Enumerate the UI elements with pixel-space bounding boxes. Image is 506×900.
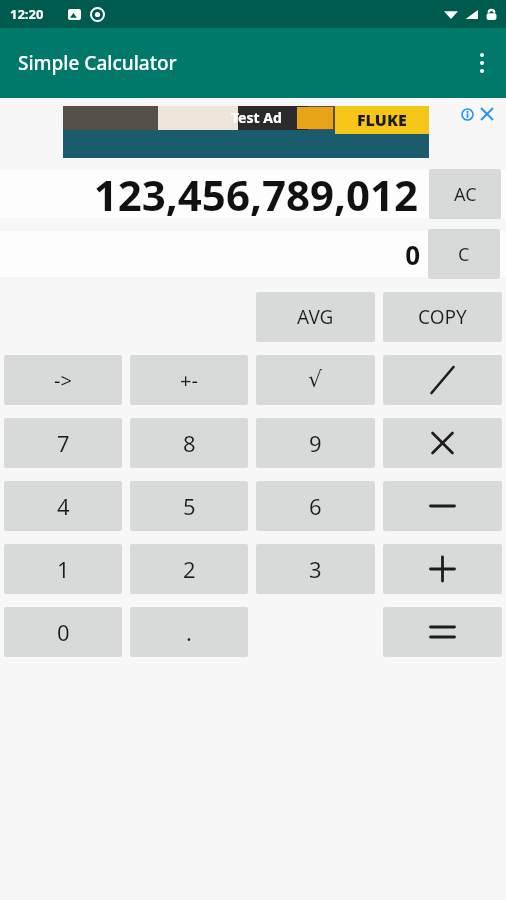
button[interactable]: Ad info (461, 108, 474, 121)
staticText: 9 (309, 428, 322, 458)
button[interactable]: 5 (130, 481, 248, 531)
button[interactable]: Multiply (383, 418, 502, 468)
button[interactable]: AVG (256, 292, 375, 342)
staticText: . (186, 617, 192, 647)
button[interactable]: Plus (383, 544, 502, 594)
staticText: 3 (309, 554, 322, 584)
button[interactable]: . (130, 607, 248, 657)
button[interactable]: AC (429, 169, 501, 219)
button[interactable]: √ (256, 355, 375, 405)
button[interactable]: +- (130, 355, 248, 405)
staticText: AVG (297, 304, 334, 330)
button[interactable]: 3 (256, 544, 375, 594)
staticText: 12:20 (10, 5, 44, 23)
staticText: 4 (57, 491, 70, 521)
staticText: √ (308, 367, 323, 393)
button[interactable]: Minus (383, 481, 502, 531)
staticText: -> (54, 367, 72, 394)
button[interactable]: C (428, 229, 500, 279)
button[interactable]: Advertisement (63, 106, 429, 158)
button[interactable]: 1 (4, 544, 122, 594)
button[interactable]: Divide (383, 355, 502, 405)
staticText: FLUKE (357, 109, 407, 131)
button[interactable]: 7 (4, 418, 122, 468)
button[interactable]: COPY (383, 292, 502, 342)
staticText: Test Ad (231, 108, 282, 127)
button[interactable]: Equals (383, 607, 502, 657)
button[interactable]: 9 (256, 418, 375, 468)
staticText: C (458, 242, 470, 267)
staticText: 6 (309, 491, 322, 521)
button[interactable]: Close ad (480, 107, 494, 121)
button[interactable]: 0 (4, 607, 122, 657)
staticText: 1 (57, 554, 70, 584)
staticText: 0 (14, 237, 420, 272)
staticText: AC (454, 182, 477, 207)
staticText: 2 (183, 554, 196, 584)
staticText: 5 (183, 491, 196, 521)
button[interactable]: More options (458, 28, 506, 98)
staticText: +- (180, 367, 198, 394)
button[interactable]: 2 (130, 544, 248, 594)
staticText: 123,456,789,012 (14, 166, 418, 222)
button[interactable]: 4 (4, 481, 122, 531)
staticText: 7 (57, 428, 70, 458)
button[interactable]: -> (4, 355, 122, 405)
staticText: 8 (183, 428, 196, 458)
staticText: Simple Calculator (18, 50, 177, 76)
staticText: 0 (57, 617, 70, 647)
button[interactable]: 8 (130, 418, 248, 468)
button[interactable]: 6 (256, 481, 375, 531)
staticText: COPY (418, 304, 467, 330)
